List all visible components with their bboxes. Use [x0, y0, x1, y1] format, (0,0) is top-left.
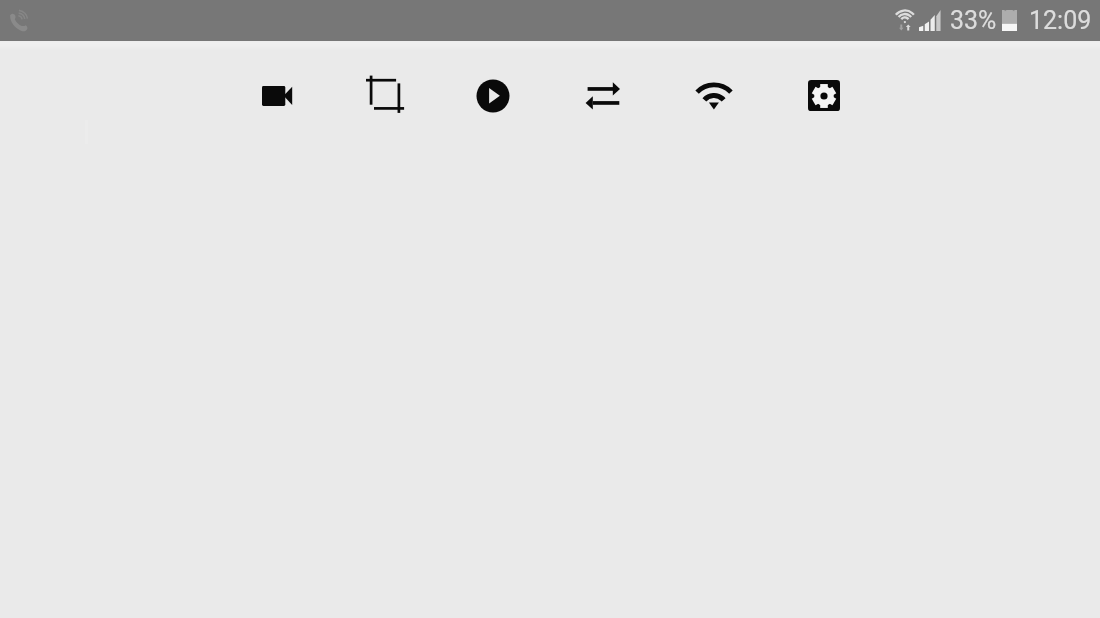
button[interactable]: Settings [798, 70, 850, 122]
button[interactable]: Play [467, 70, 519, 122]
button[interactable]: Crop [359, 70, 411, 122]
button[interactable]: Compare [577, 70, 629, 122]
staticText: 33% [950, 6, 997, 35]
button[interactable]: Wi-Fi [688, 70, 740, 122]
button[interactable]: Record video [251, 70, 303, 122]
staticText: 12:09 [1029, 6, 1092, 35]
